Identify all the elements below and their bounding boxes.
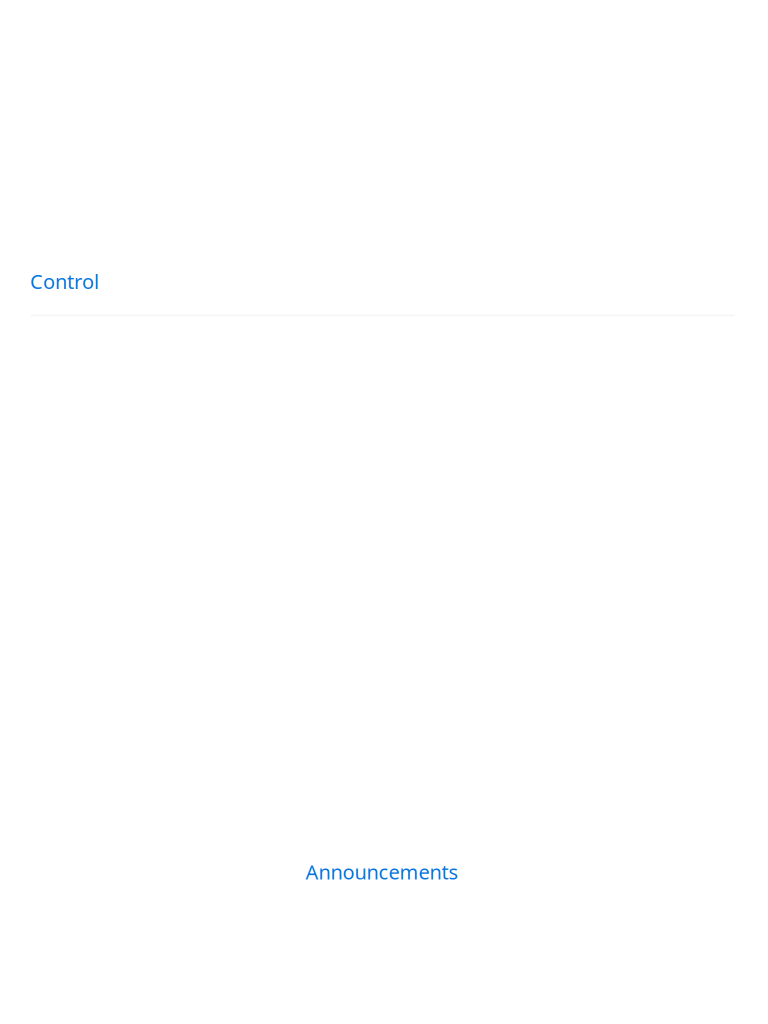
button[interactable]: Announcements <box>305 859 458 885</box>
button[interactable]: Control <box>0 263 768 315</box>
staticText: Announcements <box>305 859 458 885</box>
staticText: Control <box>30 268 99 295</box>
